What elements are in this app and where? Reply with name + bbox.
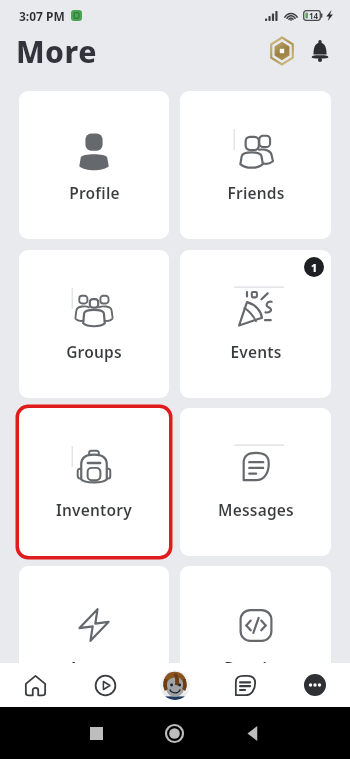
button[interactable]: Profile <box>19 91 169 239</box>
staticText: Messages <box>218 499 294 520</box>
button[interactable]: Avatar <box>19 566 169 663</box>
button[interactable]: Develop <box>180 566 331 663</box>
button[interactable]: Messages <box>180 408 331 556</box>
button[interactable]: Home <box>0 663 70 707</box>
staticText: Develop <box>224 657 287 663</box>
staticText: More <box>16 31 97 71</box>
staticText: 1 <box>311 260 318 275</box>
staticText: 14 <box>309 10 319 21</box>
button[interactable]: Chat <box>210 663 280 707</box>
button[interactable]: More <box>280 663 350 707</box>
button[interactable]: Avatar <box>140 663 210 707</box>
staticText: Avatar <box>68 657 120 663</box>
button[interactable]: Events <box>180 250 331 398</box>
button[interactable]: Inventory <box>19 408 169 556</box>
staticText: Groups <box>66 341 122 362</box>
button[interactable]: Discover <box>70 663 140 707</box>
button[interactable]: Groups <box>19 250 169 398</box>
staticText: Friends <box>227 182 285 203</box>
staticText: Profile <box>69 182 120 203</box>
staticText: Events <box>230 341 282 362</box>
button[interactable]: Robux <box>265 34 299 68</box>
button[interactable]: Notifications <box>303 34 337 68</box>
staticText: Inventory <box>56 499 132 520</box>
staticText: 3:07 PM <box>19 8 65 24</box>
button[interactable]: Friends <box>180 91 331 239</box>
